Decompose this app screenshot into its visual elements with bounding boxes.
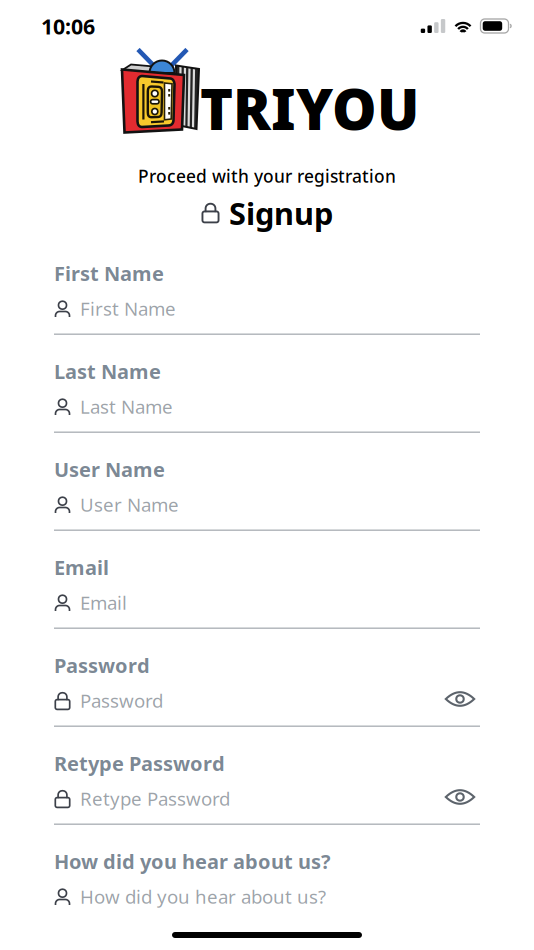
button[interactable]: User Name: [54, 460, 480, 558]
staticText: User Name: [54, 456, 165, 483]
staticText: 10:06: [41, 12, 95, 40]
button[interactable]: Show password: [439, 683, 481, 715]
button[interactable]: Password: [54, 656, 480, 754]
button[interactable]: Last Name: [54, 362, 480, 460]
staticText: Password: [80, 688, 163, 713]
staticText: Email: [80, 590, 127, 615]
staticText: Email: [54, 554, 109, 581]
staticText: Password: [54, 652, 150, 679]
button[interactable]: Show password: [439, 781, 481, 813]
staticText: Retype Password: [80, 786, 230, 811]
staticText: How did you hear about us?: [54, 848, 331, 875]
button[interactable]: Retype Password: [54, 754, 480, 852]
staticText: First Name: [80, 296, 176, 321]
button[interactable]: How did you hear about us?: [54, 852, 480, 950]
staticText: TRIYOU: [200, 71, 419, 145]
staticText: User Name: [80, 492, 179, 517]
staticText: Signup: [229, 193, 333, 233]
button[interactable]: Email: [54, 558, 480, 656]
staticText: First Name: [54, 260, 164, 287]
staticText: Last Name: [80, 394, 173, 419]
staticText: Proceed with your registration: [138, 164, 396, 187]
staticText: Retype Password: [54, 750, 225, 777]
staticText: How did you hear about us?: [80, 884, 326, 909]
button[interactable]: First Name: [54, 264, 480, 362]
staticText: Last Name: [54, 358, 161, 385]
